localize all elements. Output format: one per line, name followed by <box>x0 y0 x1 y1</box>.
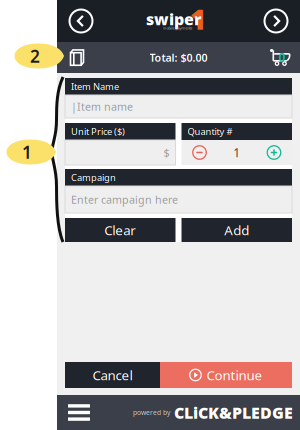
staticText: 2 <box>30 44 40 67</box>
staticText: Unit Price ($) <box>71 125 125 138</box>
button[interactable]: Shopping cart <box>266 42 294 73</box>
button[interactable]: Forward <box>256 0 296 42</box>
staticText: |Item name <box>71 99 133 114</box>
staticText: 1 <box>22 140 32 163</box>
staticText: mobile payments <box>162 25 192 31</box>
staticText: 0 <box>279 49 286 65</box>
button[interactable]: Menu <box>64 395 94 430</box>
button[interactable]: Add <box>181 218 292 242</box>
staticText: powered by <box>133 408 170 417</box>
staticText: Cancel <box>92 366 132 384</box>
staticText: Quantity # <box>187 125 232 138</box>
button[interactable]: Continue <box>160 362 292 388</box>
staticText: Campaign <box>71 171 116 184</box>
staticText: Add <box>224 221 249 239</box>
staticText: CLiCK&PLEDGE <box>174 402 293 423</box>
staticText: Clear <box>104 221 136 239</box>
button[interactable]: Decrease quantity <box>188 140 210 165</box>
staticText: swiper <box>146 8 202 30</box>
staticText: 1 <box>190 0 206 38</box>
staticText: Continue <box>206 366 262 384</box>
button[interactable]: Catalogue <box>63 42 91 73</box>
staticText: Item Name <box>71 80 119 93</box>
staticText: Enter campaign here <box>71 192 178 207</box>
button[interactable]: Back <box>61 0 101 42</box>
staticText: 1 <box>233 144 240 160</box>
staticText: $ <box>163 145 169 160</box>
button[interactable]: Cancel <box>65 362 160 388</box>
button[interactable]: Increase quantity <box>263 140 285 165</box>
button[interactable]: Clear <box>65 218 175 242</box>
staticText: Total: $0.00 <box>149 50 207 65</box>
